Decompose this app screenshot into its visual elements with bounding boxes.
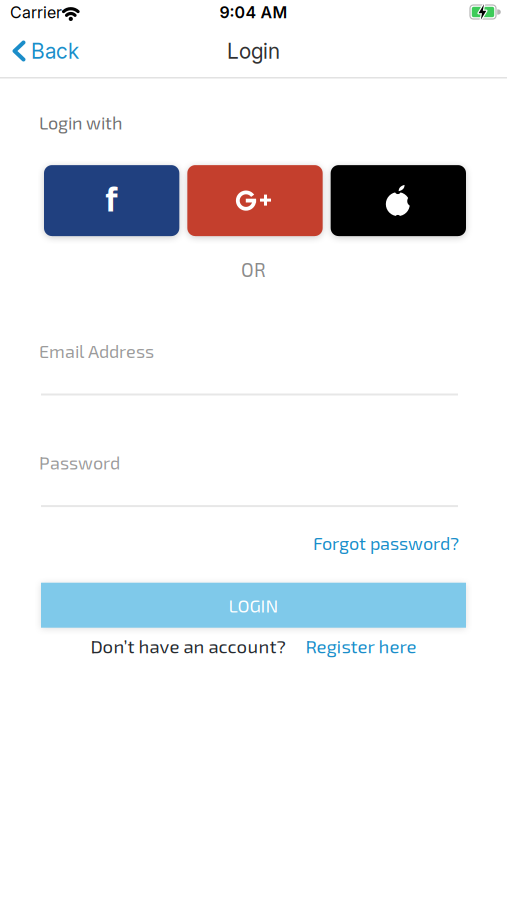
button[interactable]: Login with Apple xyxy=(331,165,466,236)
button[interactable]: Back xyxy=(0,39,79,63)
staticText: Don’t have an account? xyxy=(90,635,285,657)
staticText: Login xyxy=(227,39,280,63)
staticText: Password xyxy=(39,451,120,473)
staticText: f xyxy=(105,179,118,222)
button[interactable]: Forgot password? xyxy=(313,532,459,554)
staticText: LOGIN xyxy=(228,594,278,616)
staticText: Login with xyxy=(39,111,122,133)
button[interactable]: Login with Facebook xyxy=(44,165,179,236)
staticText: OR xyxy=(241,258,266,281)
button[interactable]: Login with Google xyxy=(187,165,323,236)
staticText: 9:04 AM xyxy=(219,3,287,22)
staticText: Forgot password? xyxy=(313,532,459,554)
staticText: Email Address xyxy=(39,340,154,361)
staticText: Register here xyxy=(305,635,416,657)
staticText: Carrier xyxy=(10,3,62,22)
button[interactable]: Register here xyxy=(305,635,416,657)
staticText: Back xyxy=(31,39,79,63)
button[interactable]: LOGIN xyxy=(41,583,466,628)
